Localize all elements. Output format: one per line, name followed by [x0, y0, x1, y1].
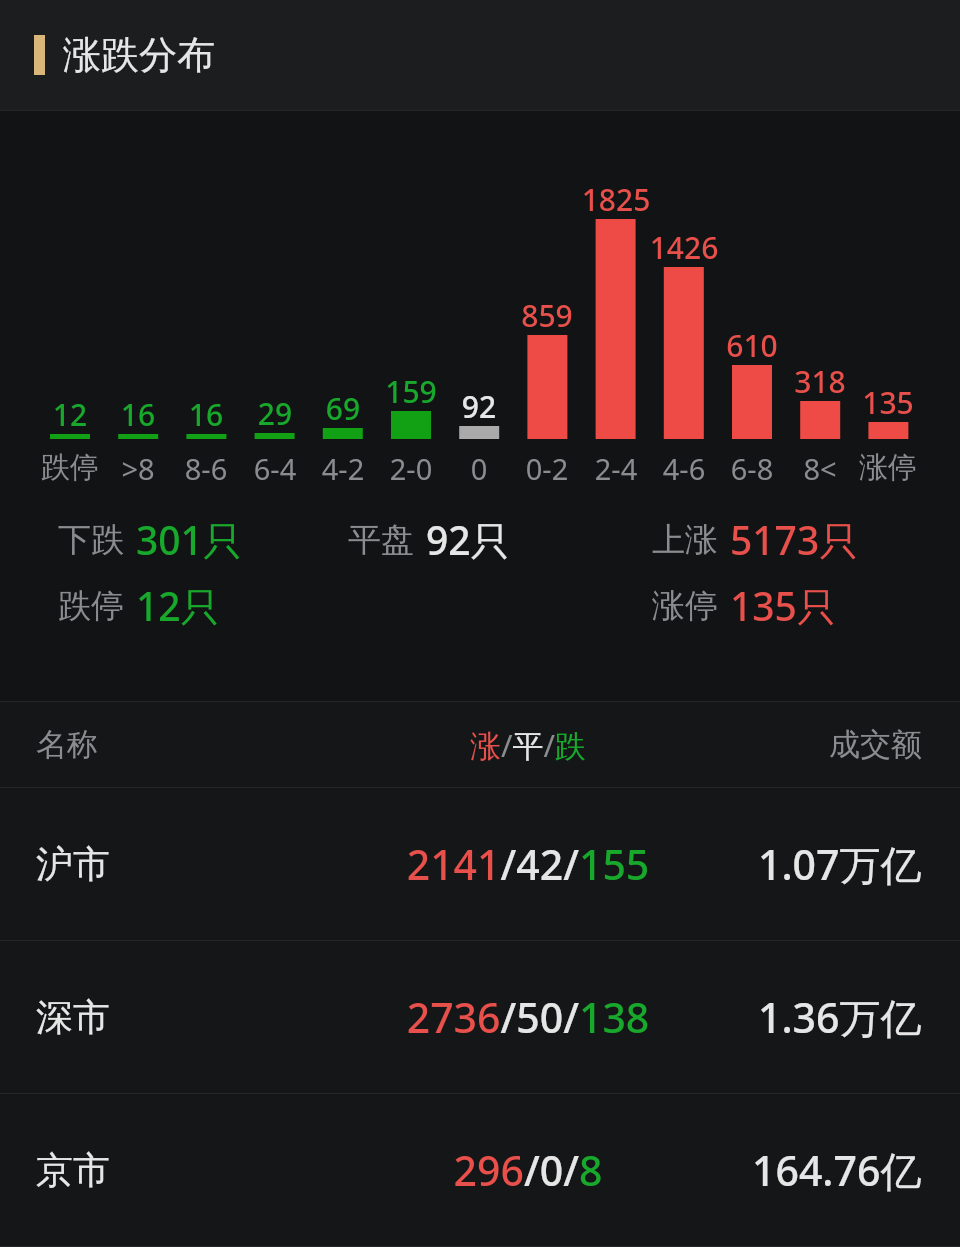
- staticText: 1426: [634, 227, 734, 268]
- staticText: 92只: [426, 513, 510, 566]
- staticText: 92: [429, 386, 529, 427]
- staticText: 1.07万亿: [758, 836, 922, 892]
- staticText: 16: [156, 394, 256, 435]
- staticText: >8: [88, 449, 188, 488]
- staticText: 下跌: [58, 519, 124, 561]
- staticText: 610: [702, 325, 802, 366]
- staticText: 0-2: [497, 449, 597, 488]
- staticText: 1.36万亿: [758, 989, 922, 1045]
- staticText: 涨停: [652, 585, 718, 627]
- staticText: 平盘: [348, 519, 414, 561]
- staticText: 2141/42/155: [328, 836, 728, 892]
- staticText: 2-4: [566, 449, 666, 488]
- staticText: 296/0/8: [328, 1142, 728, 1198]
- staticText: 跌停: [58, 585, 124, 627]
- staticText: 159: [361, 371, 461, 412]
- staticText: 0: [429, 449, 529, 488]
- staticText: 8<: [770, 449, 870, 488]
- staticText: 12只: [136, 579, 220, 632]
- staticText: 69: [293, 388, 393, 429]
- staticText: 2736/50/138: [328, 989, 728, 1045]
- staticText: 涨停: [838, 449, 938, 486]
- staticText: 301只: [136, 513, 242, 566]
- staticText: 8-6: [156, 449, 256, 488]
- staticText: 859: [497, 295, 597, 336]
- staticText: 1825: [566, 179, 666, 220]
- staticText: 成交额: [829, 725, 922, 764]
- staticText: 16: [88, 394, 188, 435]
- staticText: 5173只: [730, 513, 859, 566]
- button[interactable]: 深市: [0, 941, 960, 1093]
- staticText: 135只: [730, 579, 836, 632]
- button[interactable]: 涨跌分布: [0, 0, 960, 110]
- button[interactable]: 沪市: [0, 788, 960, 940]
- staticText: 6-4: [225, 449, 325, 488]
- staticText: 涨/平/跌: [328, 724, 728, 766]
- staticText: 深市: [36, 994, 110, 1041]
- staticText: 4-2: [293, 449, 393, 488]
- staticText: 318: [770, 361, 870, 402]
- staticText: 涨跌分布: [63, 31, 215, 79]
- staticText: 跌停: [20, 449, 120, 486]
- staticText: 京市: [36, 1147, 110, 1194]
- button[interactable]: 京市: [0, 1094, 960, 1246]
- staticText: 164.76亿: [752, 1142, 922, 1198]
- staticText: 沪市: [36, 841, 110, 888]
- staticText: 4-6: [634, 449, 734, 488]
- staticText: 上涨: [652, 519, 718, 561]
- staticText: 135: [838, 382, 938, 423]
- staticText: 2-0: [361, 449, 461, 488]
- staticText: 名称: [36, 725, 98, 764]
- staticText: 6-8: [702, 449, 802, 488]
- staticText: 12: [20, 394, 120, 435]
- staticText: 29: [225, 393, 325, 434]
